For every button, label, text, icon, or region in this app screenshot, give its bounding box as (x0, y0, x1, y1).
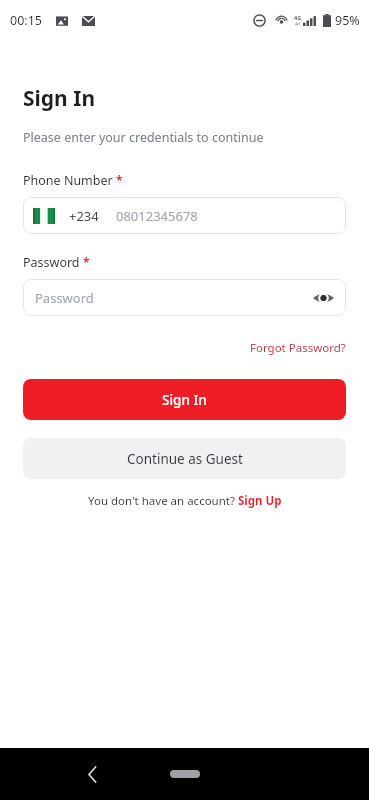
button[interactable]: Continue as Guest (23, 438, 346, 479)
button[interactable]: Home (170, 770, 200, 778)
staticText: Sign Up (238, 493, 282, 509)
staticText: Password (23, 254, 80, 271)
button[interactable]: Sign Up (238, 493, 282, 509)
staticText: Please enter your credentials to continu… (23, 129, 264, 146)
button[interactable]: +234 (23, 197, 346, 234)
staticText: Continue as Guest (127, 450, 243, 468)
staticText: +234 (69, 207, 99, 225)
staticText: 00:15 (10, 12, 42, 29)
staticText: Sign In (23, 84, 96, 113)
staticText: You don't have an account? (88, 493, 238, 509)
staticText: 4G (294, 14, 302, 21)
button[interactable]: Sign In (23, 379, 346, 420)
button[interactable]: Forgot Password? (250, 340, 346, 356)
staticText: Phone Number (23, 172, 113, 189)
staticText: * (116, 172, 123, 188)
staticText: * (83, 254, 90, 270)
button[interactable]: Password (23, 279, 346, 316)
staticText: 4+ (295, 21, 301, 28)
staticText: Password (35, 289, 311, 307)
button[interactable]: Back (78, 760, 106, 788)
staticText: Sign In (162, 391, 207, 409)
staticText: 95% (335, 12, 360, 29)
button[interactable]: Show password (311, 286, 335, 310)
staticText: 08012345678 (116, 207, 198, 225)
staticText: Forgot Password? (250, 340, 346, 356)
